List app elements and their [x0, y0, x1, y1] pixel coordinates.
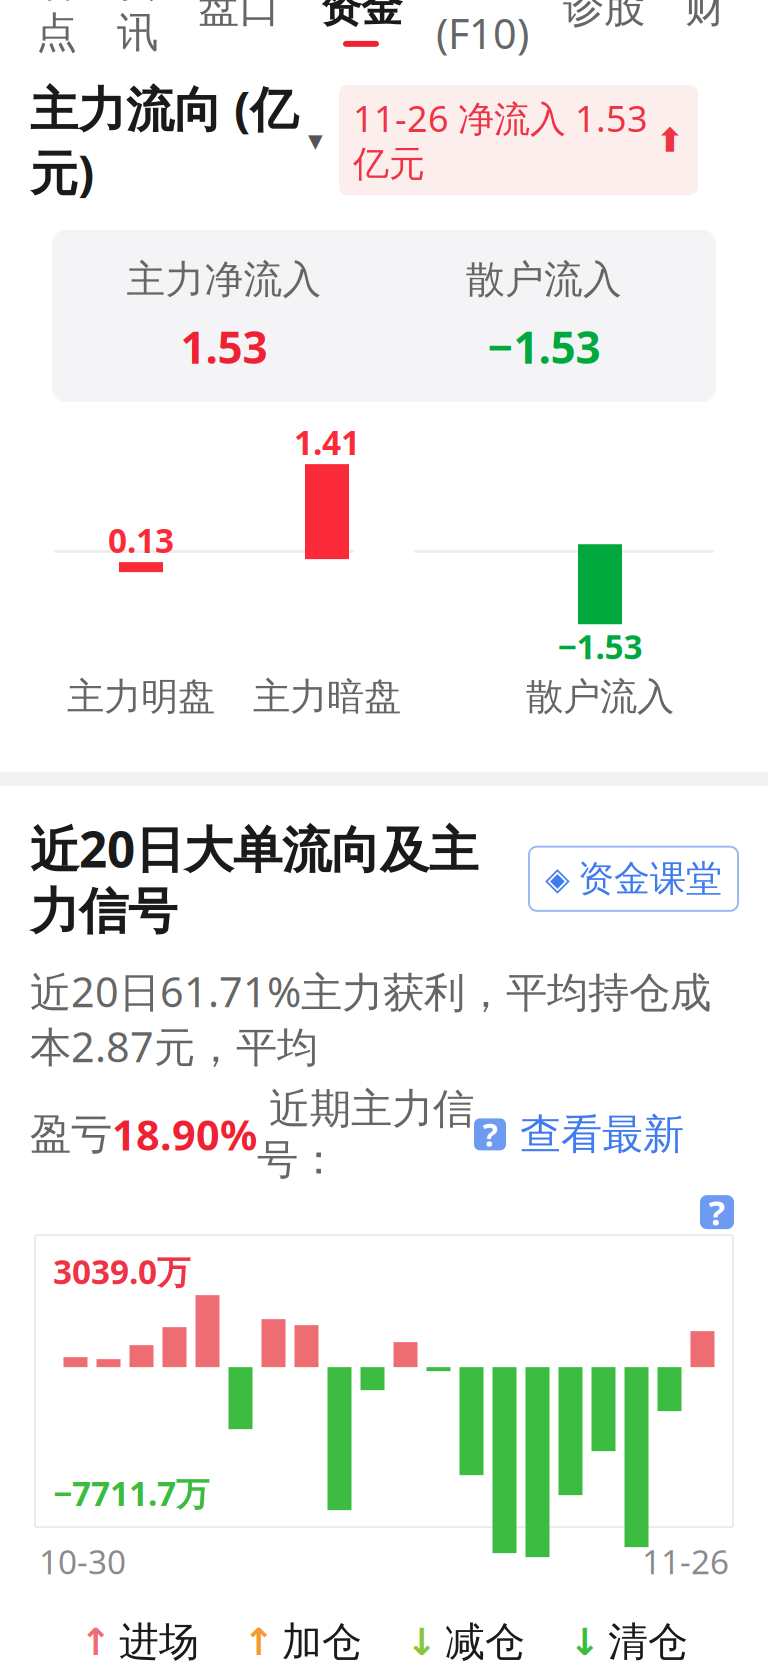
staticText: −1.53	[487, 317, 600, 376]
staticText: 简况(F10)	[436, 0, 529, 60]
staticText: 3039.0万	[53, 1249, 190, 1293]
staticText: 0.13	[108, 518, 174, 562]
staticText: 1.53	[180, 317, 267, 376]
staticText: −1.53	[557, 624, 642, 668]
button[interactable]: 简况(F10)	[422, 0, 543, 62]
staticText: 近20日61.71%主力获利，平均持仓成本2.87元，平均	[30, 964, 711, 1074]
button[interactable]: 财	[665, 0, 746, 62]
staticText: ↓	[406, 1621, 437, 1663]
staticText: ?	[708, 1189, 725, 1235]
staticText: −7711.7万	[53, 1471, 209, 1515]
staticText: 主力净流入	[126, 256, 321, 303]
button[interactable]: ◈	[529, 847, 738, 911]
button[interactable]: 资金	[300, 0, 422, 62]
staticText: 盈亏	[30, 1109, 112, 1160]
staticText: 近20日大单流向及主力信号	[30, 816, 478, 942]
staticText: 资金课堂	[578, 857, 722, 901]
staticText: 11-26	[642, 1539, 729, 1583]
button[interactable]: 诊股	[543, 0, 665, 62]
staticText: 18.90%	[112, 1107, 257, 1162]
button[interactable]: 盘口	[178, 0, 300, 62]
button[interactable]: 资讯	[97, 0, 178, 62]
staticText: ◈	[545, 861, 570, 897]
staticText: 减仓	[445, 1617, 525, 1663]
button[interactable]: 查看最新	[506, 1109, 684, 1160]
staticText: 看点	[36, 0, 77, 58]
button[interactable]: Help	[474, 1118, 506, 1150]
staticText: 散户流入	[526, 674, 674, 720]
staticText: 散户流入	[466, 256, 622, 303]
staticText: 诊股	[563, 0, 645, 33]
staticText: ⬆	[656, 121, 684, 159]
staticText: 盘口	[198, 0, 280, 33]
staticText: 清仓	[608, 1617, 688, 1663]
staticText: 主力流向 (亿元)	[30, 76, 298, 204]
staticText: 资讯	[117, 0, 158, 58]
staticText: 主力暗盘	[253, 674, 401, 720]
staticText: 近期主力信号：	[257, 1084, 474, 1185]
button[interactable]: 主力流向 (亿元)	[30, 76, 323, 204]
staticText: 11-26 净流入 1.53 亿元	[353, 94, 648, 186]
staticText: ↑	[243, 1621, 274, 1663]
staticText: ▾	[308, 124, 323, 157]
button[interactable]: 看点	[16, 0, 97, 62]
staticText: 主力明盘	[67, 674, 215, 720]
button[interactable]: Chart help	[700, 1195, 734, 1229]
staticText: 资金	[320, 0, 402, 33]
staticText: 查看最新	[520, 1109, 684, 1160]
staticText: 加仓	[282, 1617, 362, 1663]
staticText: ?	[482, 1113, 497, 1156]
staticText: ↑	[80, 1621, 111, 1663]
staticText: 10-30	[39, 1539, 126, 1583]
staticText: ↓	[569, 1621, 600, 1663]
staticText: 财	[685, 0, 726, 33]
button[interactable]: 11-26 净流入 1.53 亿元	[339, 85, 698, 195]
staticText: 进场	[119, 1617, 199, 1663]
staticText: 1.41	[294, 420, 360, 464]
